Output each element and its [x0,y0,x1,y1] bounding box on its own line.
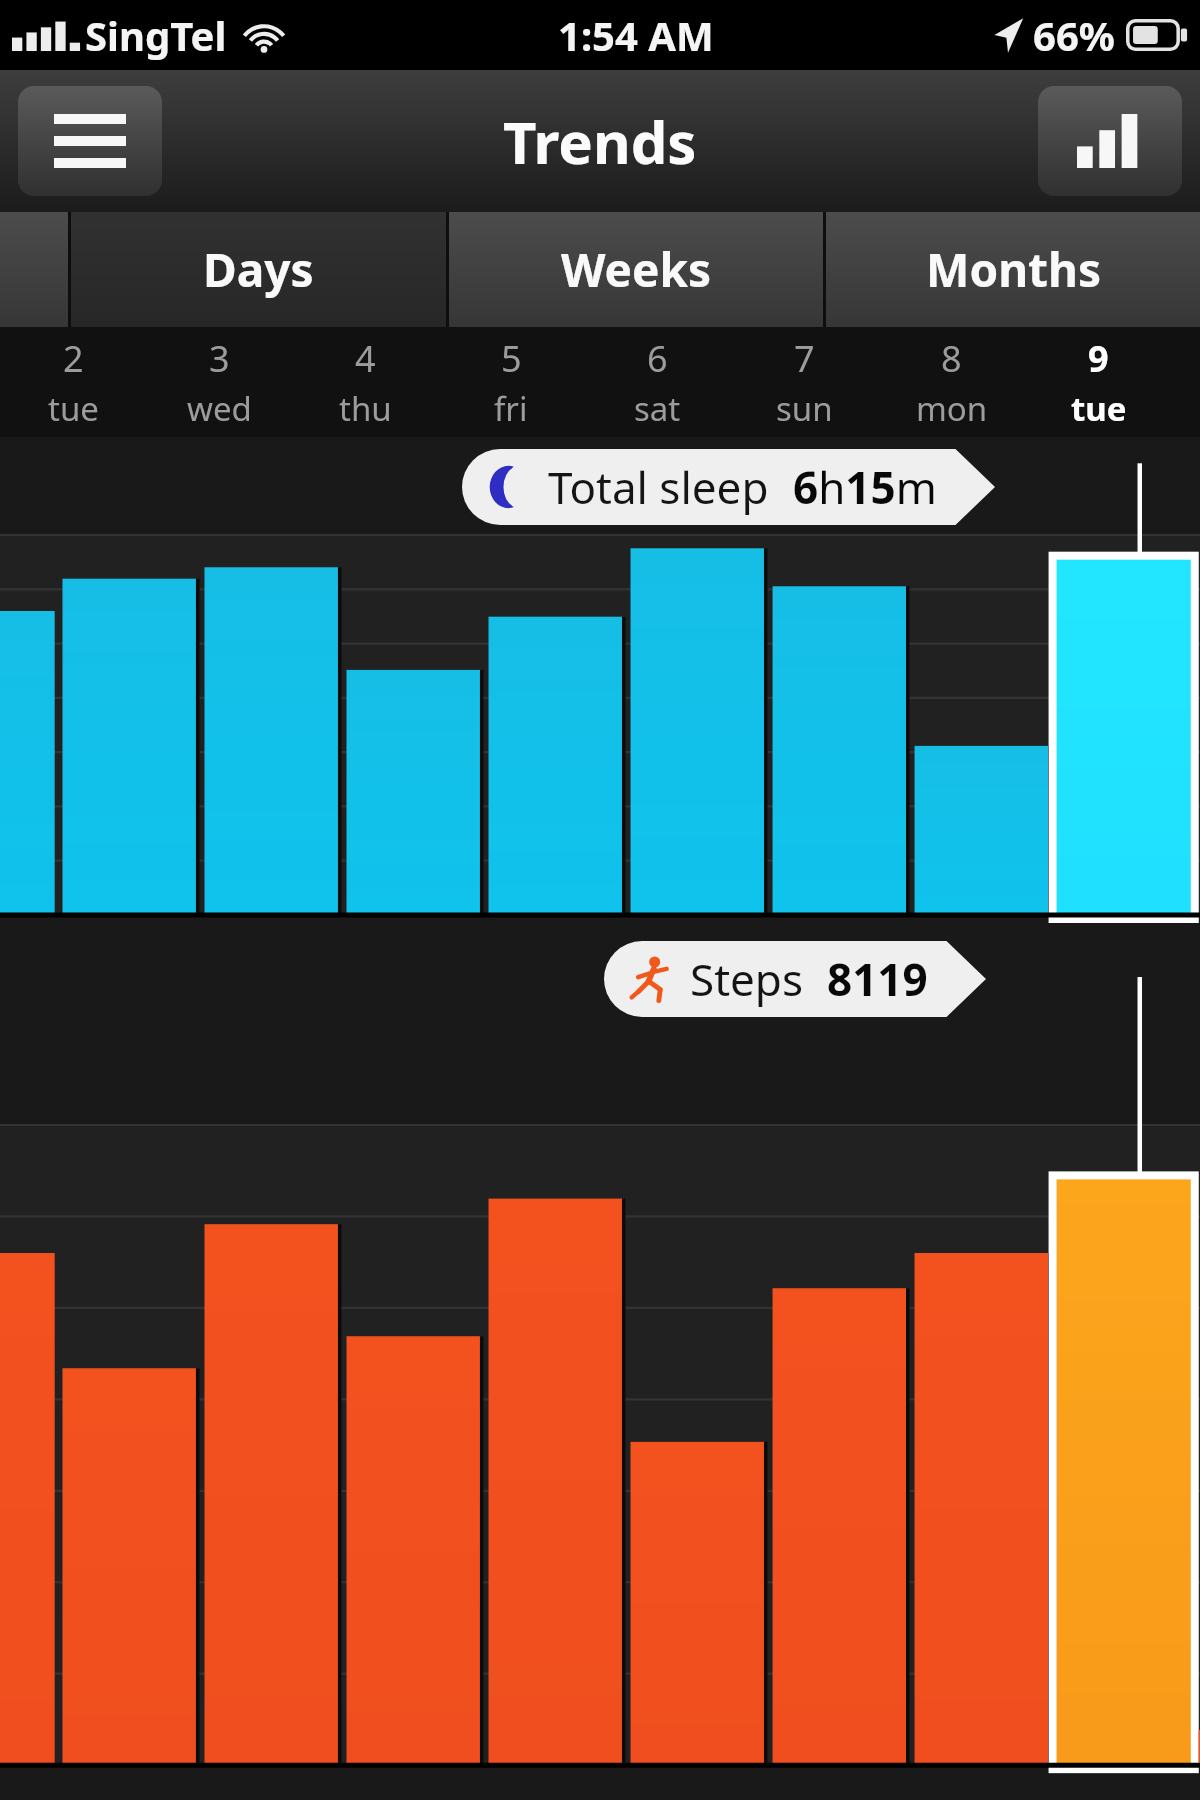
staticText: Steps [690,949,803,1009]
staticText: sun [776,386,833,431]
button[interactable]: Total sleep [462,449,995,525]
staticText: 1:54 AM [558,8,714,62]
staticText: 3 [209,334,230,383]
staticText: Days [203,238,314,301]
staticText: 2 [63,334,84,383]
button[interactable]: 3 [146,327,292,437]
staticText: Trends [503,102,697,181]
staticText: 6 [647,334,668,383]
staticText: wed [187,386,252,431]
staticText: 6h15m [793,457,937,517]
button[interactable]: 7 [731,327,878,437]
staticText: tue [1071,386,1127,431]
staticText: SingTel [85,8,227,62]
button[interactable]: 8 [878,327,1025,437]
button[interactable]: Months [826,212,1200,327]
button[interactable]: Menu [18,86,162,196]
button[interactable]: Chart view [1038,86,1182,196]
button[interactable]: 9 [1025,327,1172,437]
staticText: mon [916,386,988,431]
staticText: 8 [941,334,962,383]
staticText: 66% [1033,8,1115,62]
staticText: sat [634,386,681,431]
button[interactable]: Weeks [449,212,823,327]
button[interactable]: 5 [438,327,584,437]
staticText: 4 [355,334,376,383]
button[interactable]: 4 [292,327,438,437]
button[interactable]: Steps [604,941,986,1017]
staticText: thu [339,386,392,431]
button[interactable]: 2 [0,327,146,437]
staticText: Total sleep [548,457,769,517]
staticText: 8119 [827,949,928,1009]
button[interactable]: Days [71,212,446,327]
staticText: Months [926,238,1101,301]
staticText: 9 [1088,334,1109,383]
staticText: 5 [501,334,522,383]
staticText: tue [48,386,99,431]
staticText: fri [494,386,528,431]
staticText: Weeks [561,238,712,301]
staticText: 7 [794,334,815,383]
button[interactable]: 6 [584,327,731,437]
